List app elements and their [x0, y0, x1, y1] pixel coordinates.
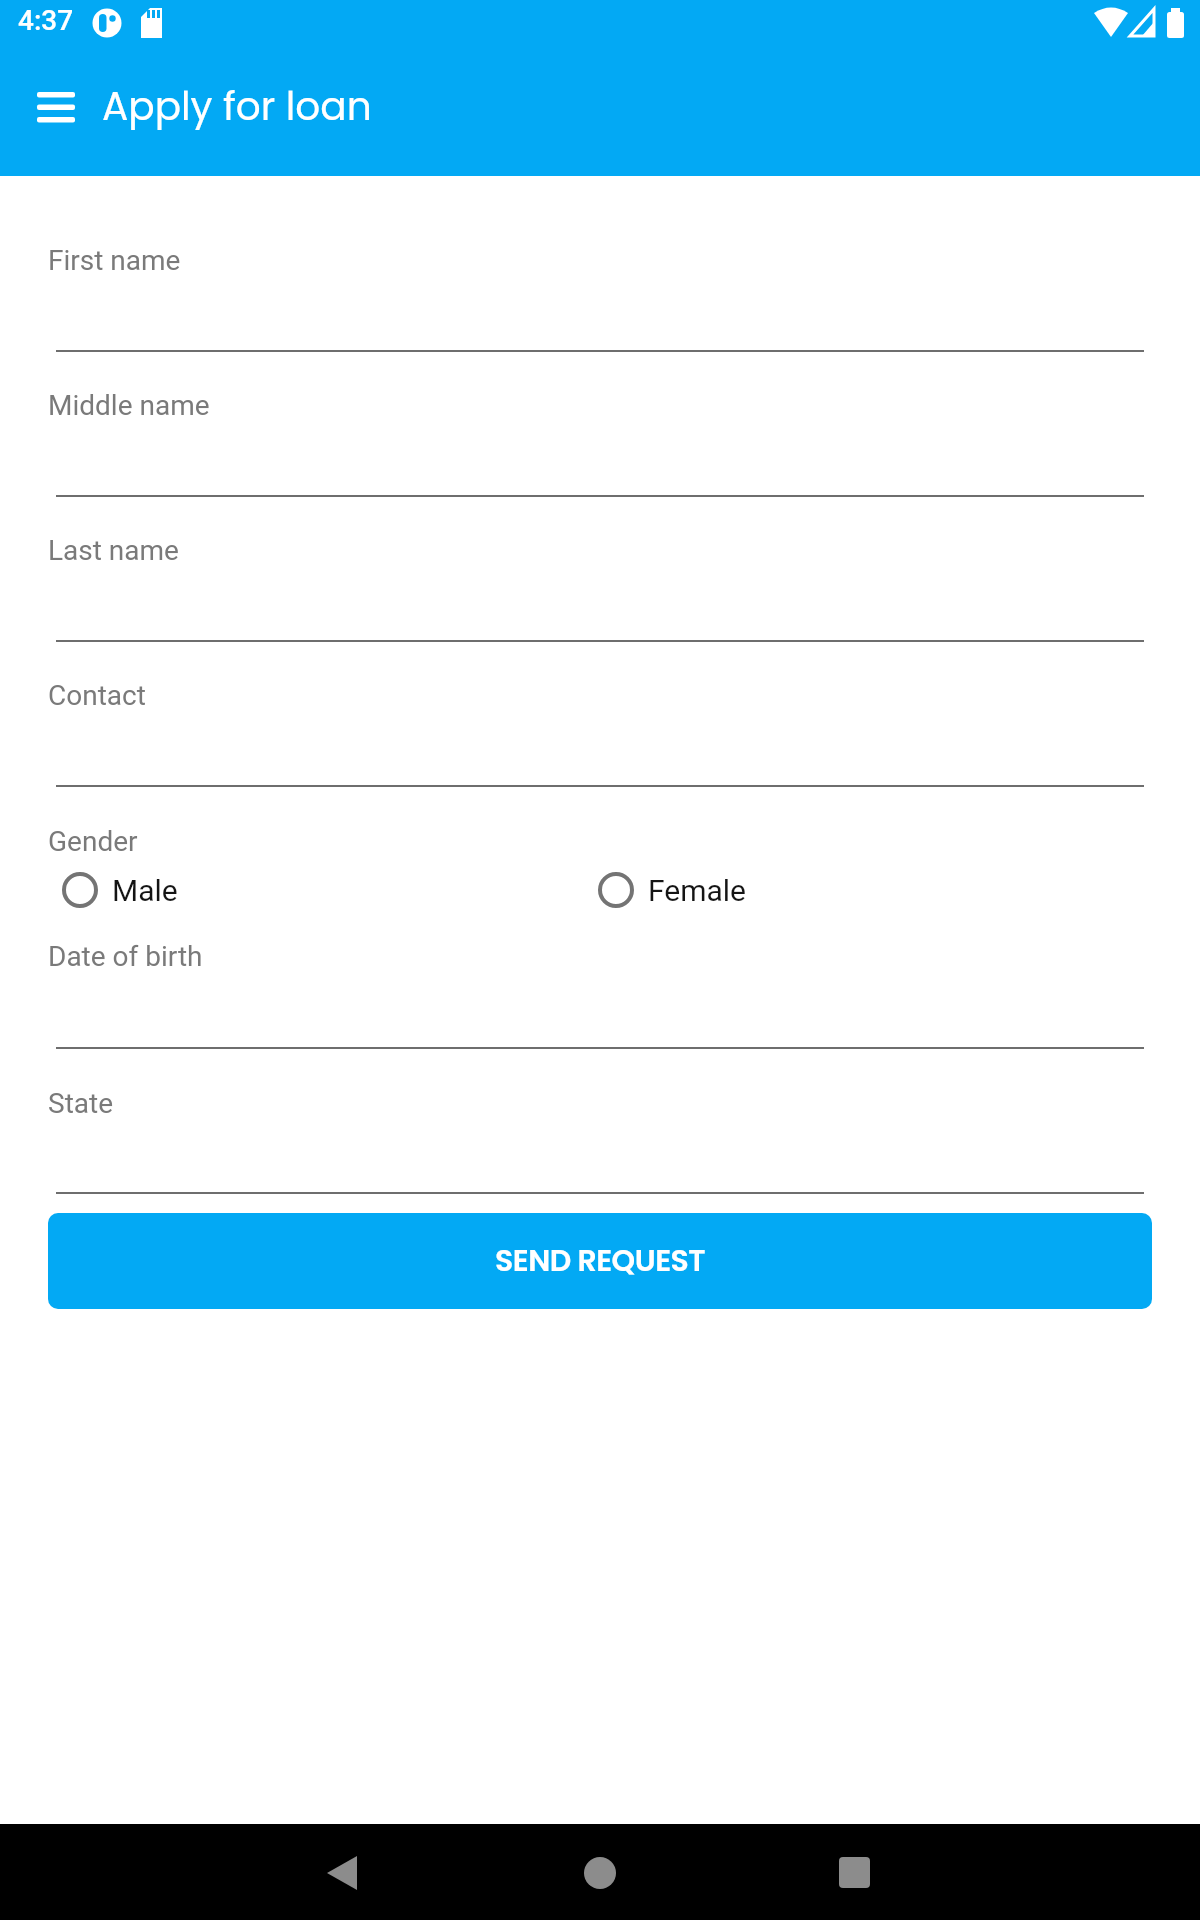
button[interactable]	[821, 1840, 887, 1906]
staticText: 4:37	[18, 4, 74, 37]
staticText: First name	[48, 244, 181, 277]
button[interactable]: SEND REQUEST	[48, 1213, 1152, 1309]
staticText: Date of birth	[48, 940, 203, 973]
staticText: Apply for loan	[102, 79, 372, 134]
button[interactable]	[310, 1840, 376, 1906]
button[interactable]: Male	[60, 866, 178, 914]
button[interactable]	[567, 1840, 633, 1906]
staticText: State	[48, 1087, 114, 1120]
staticText: Male	[112, 873, 178, 908]
staticText: Contact	[48, 679, 146, 712]
button[interactable]	[24, 84, 90, 128]
staticText: Last name	[48, 534, 179, 567]
button[interactable]: Female	[596, 866, 747, 914]
staticText: Gender	[48, 825, 138, 858]
staticText: Female	[648, 873, 747, 908]
staticText: Middle name	[48, 389, 210, 422]
staticText: SEND REQUEST	[495, 1240, 706, 1282]
